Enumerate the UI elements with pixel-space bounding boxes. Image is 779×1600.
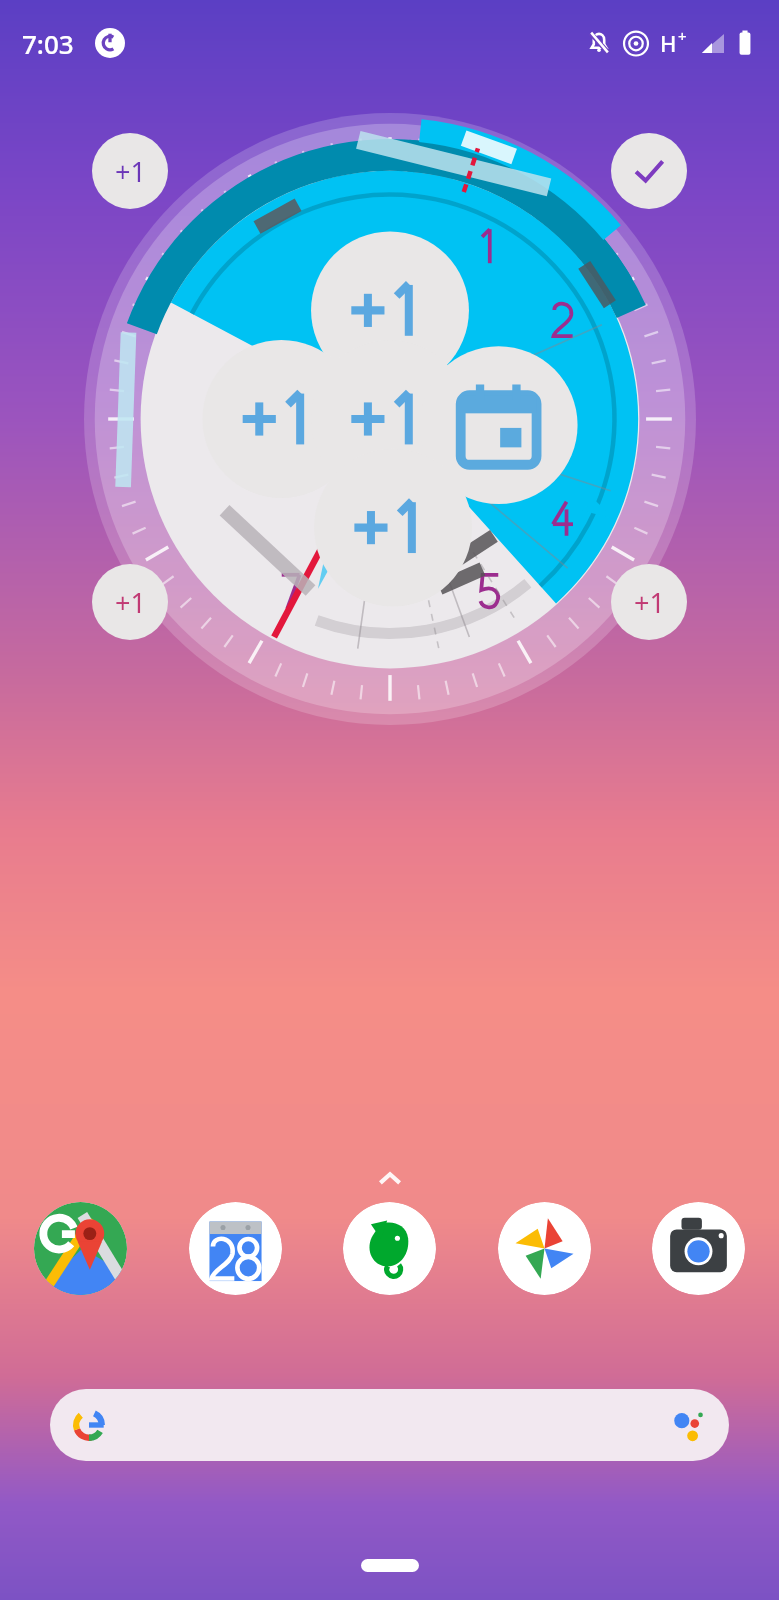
button[interactable]: Camera xyxy=(652,1202,745,1295)
staticText: H xyxy=(660,28,677,58)
button[interactable]: Evernote xyxy=(343,1202,436,1295)
button[interactable]: Add complication xyxy=(611,564,687,640)
button[interactable]: Home xyxy=(361,1559,419,1572)
staticText: +1 xyxy=(115,584,146,621)
button[interactable]: Calendar xyxy=(189,1202,282,1295)
staticText: +1 xyxy=(115,153,146,190)
button[interactable]: Add complication xyxy=(92,133,168,209)
button[interactable]: Search xyxy=(50,1389,729,1461)
button[interactable]: Apply xyxy=(611,133,687,209)
staticText: 7:03 xyxy=(22,26,74,61)
button[interactable]: Maps xyxy=(34,1202,127,1295)
button[interactable]: Photos xyxy=(498,1202,591,1295)
staticText: +1 xyxy=(634,584,665,621)
button[interactable]: Sectograph watch face preview xyxy=(84,113,696,725)
staticText: + xyxy=(678,26,687,46)
button[interactable]: Add complication xyxy=(92,564,168,640)
